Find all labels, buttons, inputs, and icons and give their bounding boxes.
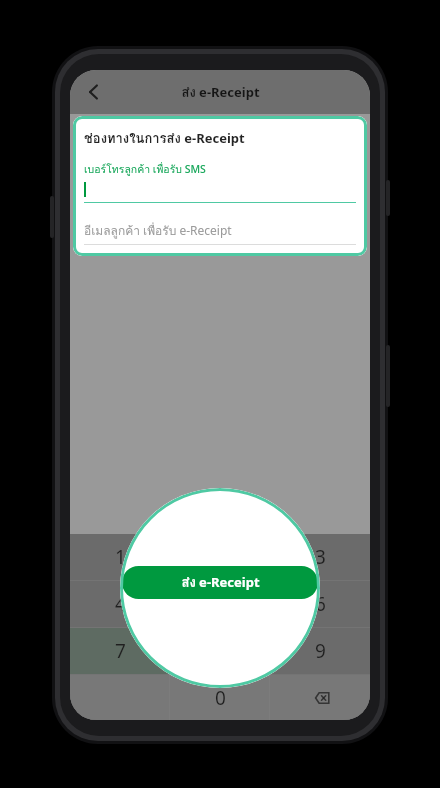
staticText: อีเมลลูกค้า เพื่อรับ e-Receipt	[84, 221, 232, 240]
staticText: 9	[315, 638, 326, 664]
button[interactable]: 3	[270, 534, 370, 580]
button[interactable]: 7	[70, 628, 170, 674]
button[interactable]: 4	[70, 581, 170, 627]
staticText: 2	[215, 544, 226, 570]
staticText: เบอร์โทรลูกค้า เพื่อรับ SMS	[84, 161, 206, 178]
button[interactable]	[70, 675, 170, 720]
button[interactable]: 2	[170, 534, 270, 580]
staticText: 0	[215, 685, 226, 711]
button[interactable]: ส่ง e-Receipt	[122, 566, 318, 599]
staticText: ช่องทางในการส่ง e-Receipt	[84, 128, 245, 149]
staticText: ส่ง e-Receipt	[181, 572, 260, 593]
staticText: 4	[115, 591, 126, 617]
staticText: 6	[315, 591, 326, 617]
button[interactable]: 1	[70, 534, 170, 580]
staticText: 1	[115, 544, 126, 570]
button[interactable]: ช่องทางในการส่ง e-Receipt	[73, 116, 367, 256]
button[interactable]: 6	[270, 581, 370, 627]
staticText: 5	[215, 591, 226, 617]
button[interactable]: 9	[270, 628, 370, 674]
staticText: 7	[115, 638, 126, 664]
button[interactable]: Back	[76, 74, 112, 110]
button[interactable]: 0	[170, 675, 270, 720]
button[interactable]: Backspace	[270, 675, 370, 720]
staticText: ส่ง e-Receipt	[181, 82, 260, 103]
button[interactable]: 5	[170, 581, 270, 627]
button[interactable]: 8	[170, 628, 270, 674]
staticText: 3	[315, 544, 326, 570]
